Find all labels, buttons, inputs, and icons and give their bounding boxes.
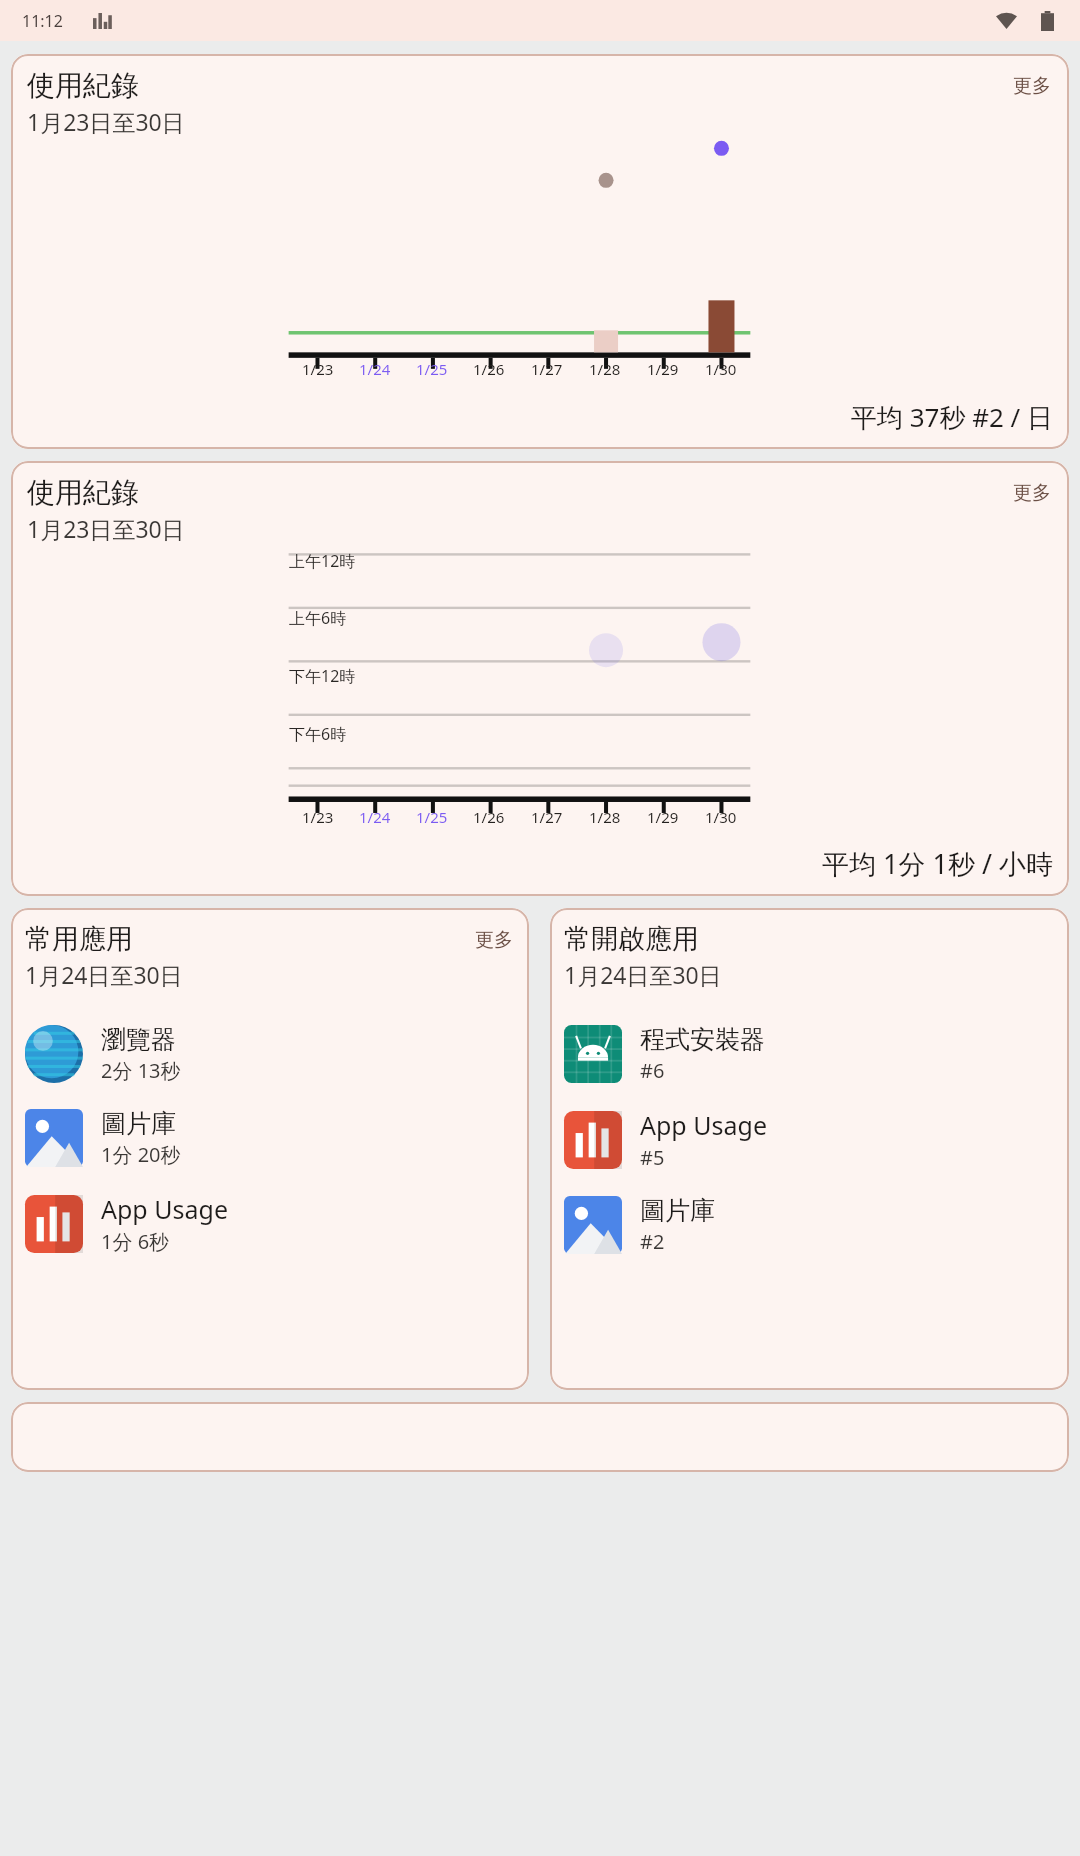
staticText: 使用紀錄 (27, 68, 139, 103)
staticText: 1/23 (302, 359, 334, 379)
staticText: App Usage (640, 1108, 767, 1142)
button[interactable]: 更多 (1007, 68, 1053, 98)
button[interactable]: 更多 (469, 922, 515, 952)
staticText: 1/28 (589, 359, 621, 379)
staticText: 1/28 (589, 807, 621, 827)
staticText: 1/30 (705, 359, 737, 379)
other: Battery (1041, 11, 1054, 31)
staticText: 1月23日至30日 (27, 513, 185, 544)
button[interactable]: 程式安裝器 (564, 1024, 1055, 1084)
staticText: 1/24 (359, 807, 391, 827)
button[interactable]: 常用應用 (11, 908, 529, 1390)
button[interactable] (11, 1402, 1069, 1472)
staticText: 下午12時 (289, 665, 356, 687)
staticText: 圖片庫 (640, 1195, 715, 1226)
staticText: 1/29 (647, 807, 679, 827)
staticText: 圖片庫 (101, 1108, 176, 1139)
staticText: 使用紀錄 (27, 475, 139, 510)
staticText: #5 (640, 1144, 665, 1171)
staticText: 上午12時 (289, 550, 356, 572)
staticText: 1/23 (302, 807, 334, 827)
staticText: #6 (640, 1057, 665, 1084)
staticText: 上午6時 (289, 607, 347, 629)
button[interactable]: App Usage (25, 1192, 515, 1255)
staticText: 1月24日至30日 (25, 959, 183, 990)
staticText: 1/30 (705, 807, 737, 827)
staticText: 常開啟應用 (564, 922, 699, 956)
staticText: App Usage (101, 1192, 228, 1226)
button[interactable]: 常開啟應用 (550, 908, 1069, 1390)
staticText: 1/27 (531, 807, 563, 827)
staticText: 1/27 (531, 359, 563, 379)
staticText: 1月23日至30日 (27, 106, 185, 137)
staticText: 程式安裝器 (640, 1024, 765, 1055)
staticText: 1/25 (416, 359, 448, 379)
staticText: 1/24 (359, 359, 391, 379)
staticText: 1/26 (473, 807, 505, 827)
button[interactable]: 使用紀錄 (11, 461, 1069, 896)
other: Usage statistics (93, 13, 112, 29)
button[interactable]: 更多 (1007, 475, 1053, 505)
button[interactable]: 使用紀錄 (11, 54, 1069, 449)
staticText: 平均 1分 1秒 / 小時 (27, 845, 1053, 882)
staticText: 11:12 (22, 10, 63, 32)
staticText: 2分 13秒 (101, 1057, 181, 1084)
button[interactable]: App Usage (564, 1108, 1055, 1171)
staticText: 1/29 (647, 359, 679, 379)
button[interactable]: 瀏覽器 (25, 1024, 515, 1084)
staticText: 1分 20秒 (101, 1141, 181, 1168)
staticText: 1分 6秒 (101, 1228, 170, 1255)
button[interactable]: 圖片庫 (564, 1195, 1055, 1255)
staticText: 平均 37秒 #2 / 日 (27, 399, 1053, 435)
staticText: 下午6時 (289, 723, 347, 745)
staticText: #2 (640, 1228, 665, 1255)
button[interactable]: 圖片庫 (25, 1108, 515, 1168)
staticText: 常用應用 (25, 922, 133, 956)
staticText: 1/25 (416, 807, 448, 827)
staticText: 1/26 (473, 359, 505, 379)
staticText: 更多 (1013, 481, 1051, 505)
other: Wi-Fi (996, 13, 1017, 29)
staticText: 瀏覽器 (101, 1024, 176, 1055)
staticText: 1月24日至30日 (564, 959, 722, 990)
staticText: 更多 (1013, 74, 1051, 98)
staticText: 更多 (475, 928, 513, 952)
